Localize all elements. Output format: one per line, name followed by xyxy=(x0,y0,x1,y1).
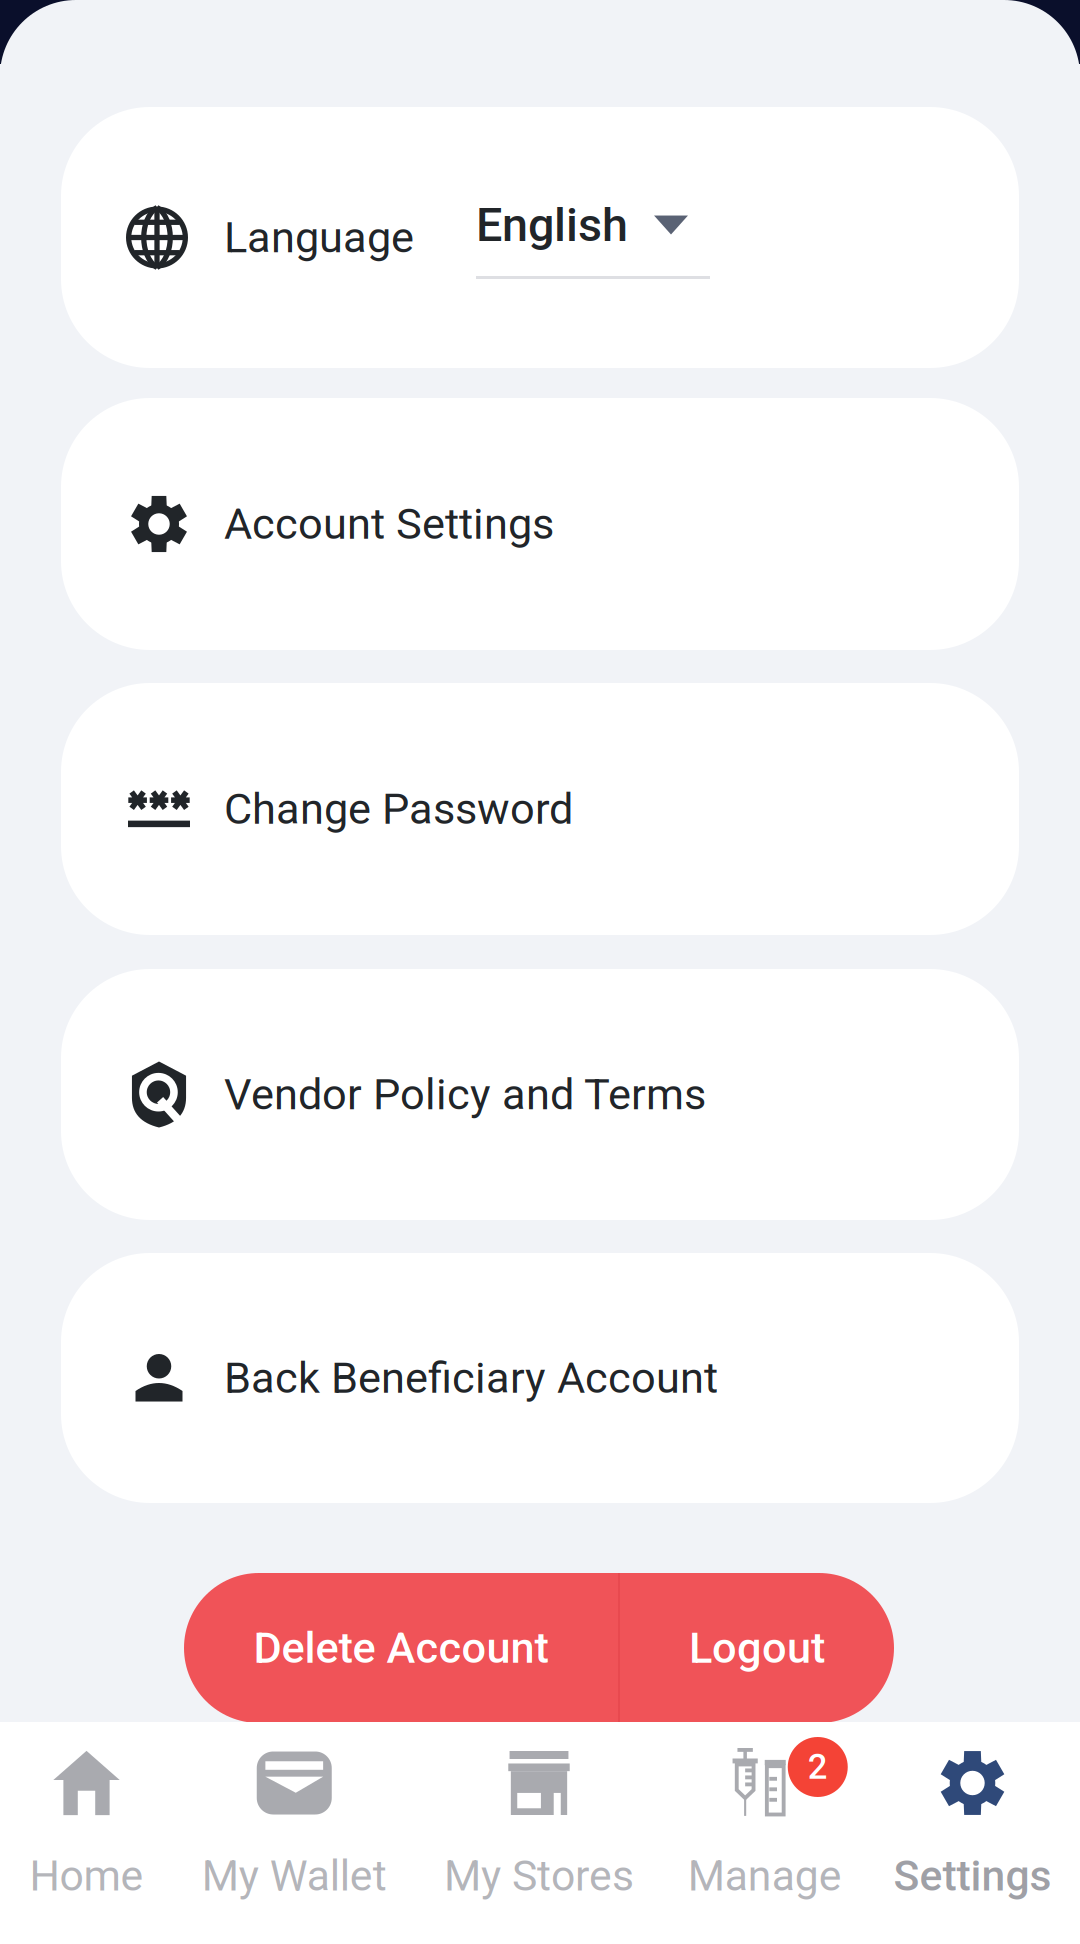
staticText: English xyxy=(476,198,628,252)
staticText: Change Password xyxy=(224,784,573,834)
staticText: 2 xyxy=(808,1747,828,1787)
button[interactable]: 2 xyxy=(690,1722,840,1944)
staticText: Settings xyxy=(893,1851,1051,1901)
button[interactable]: My Wallet xyxy=(200,1722,388,1944)
button[interactable]: My Stores xyxy=(445,1722,632,1944)
button[interactable]: Vendor Policy and Terms xyxy=(61,969,1019,1220)
button[interactable]: Account Settings xyxy=(61,398,1019,650)
button[interactable]: Logout xyxy=(620,1573,894,1723)
staticText: Vendor Policy and Terms xyxy=(224,1069,706,1120)
button[interactable]: Change Password xyxy=(61,683,1019,935)
staticText: Language xyxy=(224,212,414,263)
staticText: My Stores xyxy=(444,1851,634,1901)
button[interactable]: Settings xyxy=(897,1722,1048,1944)
staticText: Logout xyxy=(689,1623,825,1673)
staticText: Home xyxy=(29,1851,143,1901)
staticText: Manage xyxy=(688,1851,842,1901)
staticText: My Wallet xyxy=(202,1851,387,1901)
button[interactable]: Home xyxy=(30,1722,143,1944)
staticText: Account Settings xyxy=(224,499,554,549)
staticText: Back Beneficiary Account xyxy=(224,1353,718,1403)
button[interactable]: Language xyxy=(61,107,1019,368)
button[interactable]: Delete Account xyxy=(184,1573,618,1723)
button[interactable]: Back Beneficiary Account xyxy=(61,1253,1019,1503)
staticText: Delete Account xyxy=(253,1623,548,1673)
